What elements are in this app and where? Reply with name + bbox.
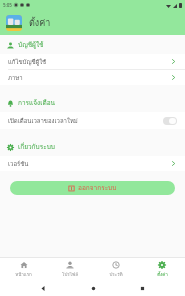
staticText: เกี่ยวกับระบบ [18,142,55,152]
button[interactable]: Recents [135,281,149,295]
staticText: แก้ไขบัญชีผู้ใช้ [8,57,170,67]
button[interactable]: Back [36,281,50,295]
staticText: ประวัติ [109,271,123,278]
staticText: การแจ้งเตือน [18,98,56,108]
button[interactable]: ออกจากระบบ [10,181,175,195]
button[interactable]: ภาษา [0,70,185,85]
button[interactable]: เวอร์ชัน [0,156,185,171]
button[interactable]: เปิดเตือนเวลาของเวลาใหม่ [0,112,185,129]
button[interactable]: หน้าแรก [0,258,47,280]
button[interactable]: ประวัติ [93,258,139,280]
staticText: ตั้งค่า [157,271,168,278]
staticText: โปรไฟล์ [62,271,78,278]
staticText: ตั้งค่า [29,16,51,30]
button[interactable]: ตั้งค่า [139,258,185,280]
staticText: บัญชีผู้ใช้ [18,40,44,50]
staticText: หน้าแรก [15,271,32,278]
staticText: ภาษา [8,73,170,83]
button[interactable]: แก้ไขบัญชีผู้ใช้ [0,54,185,69]
button[interactable]: Home [86,281,100,295]
button[interactable]: โปรไฟล์ [47,258,93,280]
staticText: เวอร์ชัน [8,159,170,169]
staticText: เปิดเตือนเวลาของเวลาใหม่ [8,116,163,126]
staticText: 5:05 [3,2,12,8]
staticText: ออกจากระบบ [78,183,117,193]
